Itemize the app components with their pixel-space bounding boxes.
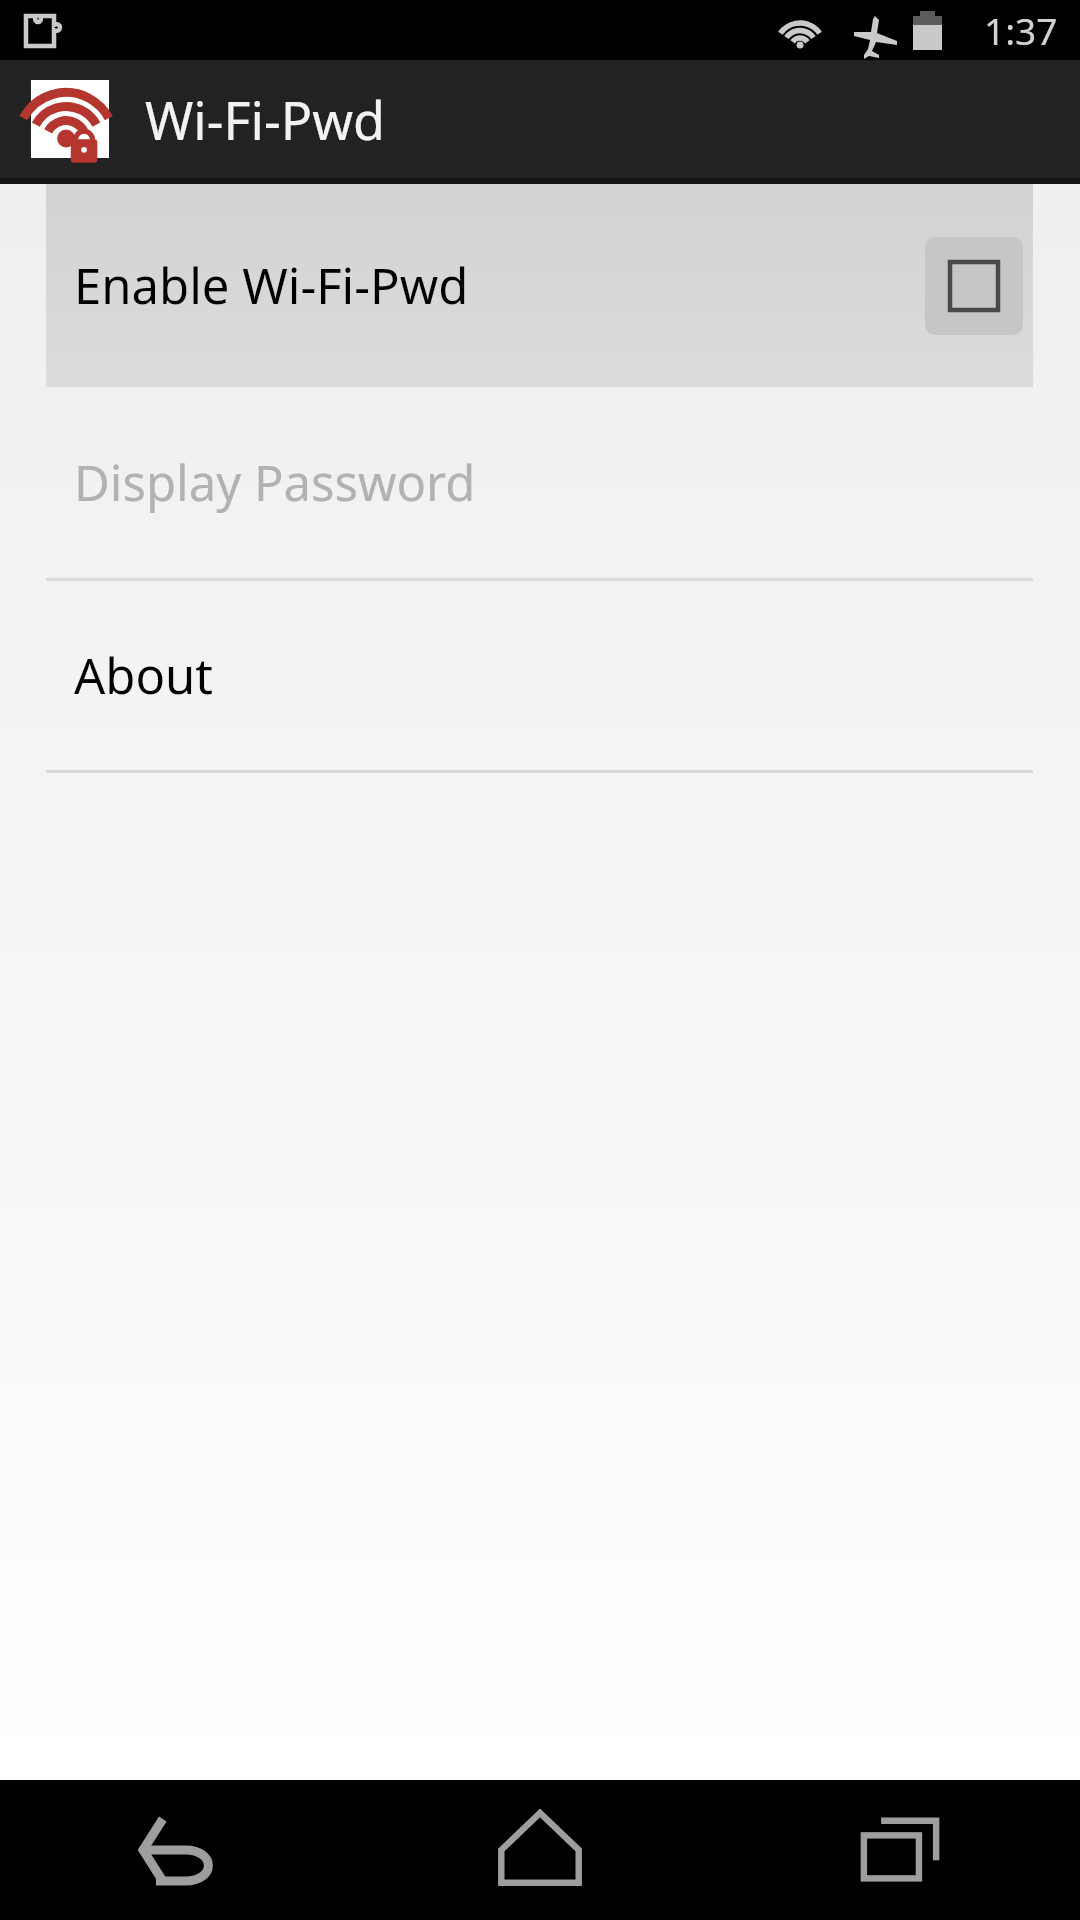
- button[interactable]: Enable Wi-Fi-Pwd checkbox: [925, 237, 1023, 335]
- staticText: 1:37: [984, 5, 1058, 55]
- button[interactable]: About: [0, 581, 1080, 770]
- staticText: About: [74, 642, 214, 709]
- staticText: Wi-Fi-Pwd: [145, 84, 385, 155]
- button[interactable]: Back: [0, 1780, 360, 1920]
- staticText: Display Password: [74, 449, 476, 516]
- button[interactable]: Home: [360, 1780, 720, 1920]
- button[interactable]: Recent apps: [720, 1780, 1080, 1920]
- button[interactable]: Enable Wi-Fi-Pwd: [46, 184, 1033, 387]
- staticText: Enable Wi-Fi-Pwd: [74, 252, 469, 319]
- button[interactable]: Display Password: [0, 387, 1080, 578]
